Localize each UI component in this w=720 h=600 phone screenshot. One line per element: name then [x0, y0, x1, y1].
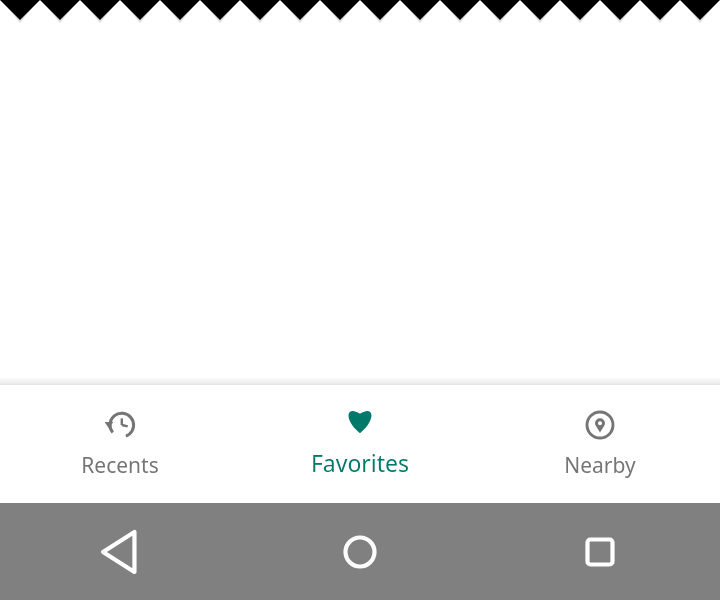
button[interactable]: Favorites [240, 385, 480, 503]
staticText: Nearby [480, 451, 720, 480]
button[interactable]: Recents [0, 385, 240, 503]
button[interactable]: Recent apps [480, 503, 720, 600]
button[interactable]: Back [0, 503, 240, 600]
button[interactable]: Nearby [480, 385, 720, 503]
staticText: Favorites [240, 447, 480, 478]
staticText: Recents [0, 451, 240, 480]
button[interactable]: Home [240, 503, 480, 600]
